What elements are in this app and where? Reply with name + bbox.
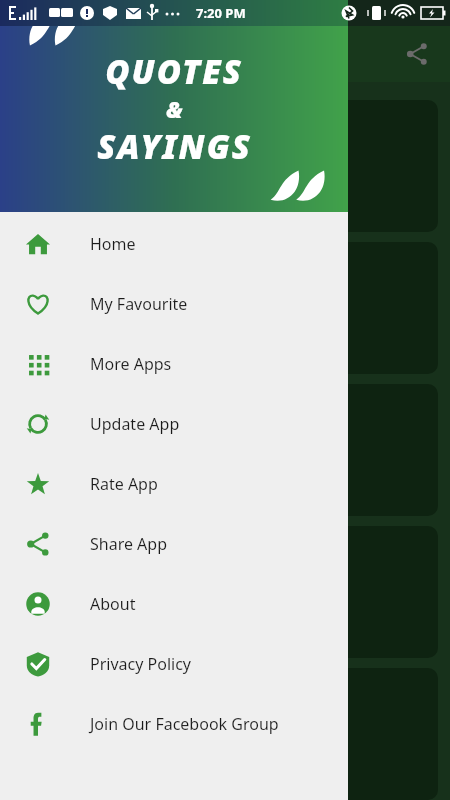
button[interactable]: ng xyxy=(12,384,438,516)
staticText: Join Our Facebook Group xyxy=(90,713,279,735)
button[interactable]: Join Our Facebook Group xyxy=(0,694,348,754)
staticText: My Favourite xyxy=(90,293,188,315)
button[interactable]: Update App xyxy=(0,394,348,454)
staticText: … मिलके xyxy=(30,143,70,189)
button[interactable]: … मिलके xyxy=(12,100,438,232)
button[interactable]: Privacy Policy xyxy=(0,634,348,694)
staticText: urite xyxy=(30,581,68,604)
button[interactable]: My Favourite xyxy=(0,274,348,334)
button[interactable]: Rate App xyxy=(0,454,348,514)
button[interactable]: urite xyxy=(12,526,438,658)
staticText: Sayings xyxy=(30,297,92,320)
button[interactable]: Share App xyxy=(0,514,348,574)
button[interactable]: More Apps xyxy=(0,334,348,394)
button[interactable]: Home xyxy=(0,214,348,274)
staticText: More Apps xyxy=(90,353,172,375)
button[interactable]: Share xyxy=(400,37,434,71)
button[interactable] xyxy=(12,668,438,800)
staticText: Update App xyxy=(90,413,180,435)
button[interactable]: Sayings xyxy=(12,242,438,374)
staticText: & xyxy=(166,94,183,124)
button[interactable]: About xyxy=(0,574,348,634)
staticText: 7:20 PM xyxy=(196,4,246,22)
staticText: Privacy Policy xyxy=(90,653,191,675)
staticText: Rate App xyxy=(90,473,158,495)
staticText: About xyxy=(90,593,136,615)
staticText: SAYINGS xyxy=(97,124,252,169)
staticText: Share App xyxy=(90,533,168,555)
staticText: QUOTES xyxy=(105,49,243,94)
staticText: Home xyxy=(90,233,136,255)
